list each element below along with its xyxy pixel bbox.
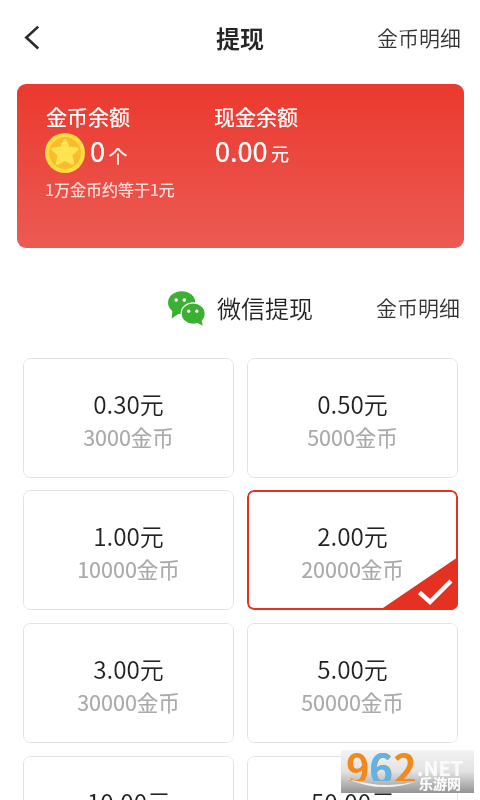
staticText: 50000金币 [301, 686, 404, 717]
staticText: 3.00元 [93, 651, 164, 686]
staticText: 5.00元 [317, 651, 388, 686]
button[interactable]: Back [9, 14, 55, 60]
staticText: 10000金币 [77, 553, 180, 584]
staticText: 现金余额 [214, 101, 298, 131]
staticText: 20000金币 [301, 553, 404, 584]
staticText: 提现 [216, 20, 264, 55]
button[interactable]: 金币余额 [17, 84, 464, 248]
staticText: 962 [346, 738, 417, 781]
staticText: 微信提现 [217, 290, 313, 325]
button[interactable]: 2.00元 [247, 490, 458, 610]
button[interactable]: 3.00元 [23, 623, 234, 743]
button[interactable]: 金币明细 [372, 16, 466, 58]
button[interactable]: 0.30元 [23, 358, 234, 478]
staticText: 个 [109, 142, 127, 168]
staticText: 6 [369, 738, 393, 781]
staticText: 金币明细 [376, 292, 460, 322]
button[interactable]: 5.00元 [247, 623, 458, 743]
staticText: 金币明细 [377, 22, 461, 52]
staticText: 1万金币约等于1元 [45, 177, 175, 200]
button[interactable]: 1.00元 [23, 490, 234, 610]
button[interactable]: 微信提现 [168, 289, 313, 326]
staticText: 金币余额 [46, 101, 130, 131]
staticText: 3000金币 [83, 421, 174, 452]
staticText: 50.00元 [311, 784, 395, 800]
staticText: 0.30元 [93, 386, 164, 421]
staticText: 元 [271, 140, 289, 166]
staticText: 乐游网 [419, 773, 461, 793]
staticText: 0.00 [215, 131, 268, 170]
button[interactable]: 金币明细 [371, 287, 465, 327]
button[interactable]: 50.00元 [247, 756, 458, 800]
button[interactable]: 10.00元 [23, 756, 234, 800]
staticText: .NET [417, 753, 464, 782]
staticText: 10.00元 [87, 784, 171, 800]
staticText: 1.00元 [93, 518, 164, 553]
staticText: 2.00元 [317, 518, 388, 553]
staticText: 5000金币 [307, 421, 398, 452]
button[interactable]: 0.50元 [247, 358, 458, 478]
staticText: 30000金币 [77, 686, 180, 717]
staticText: 0 [90, 131, 105, 170]
staticText: 0.50元 [317, 386, 388, 421]
